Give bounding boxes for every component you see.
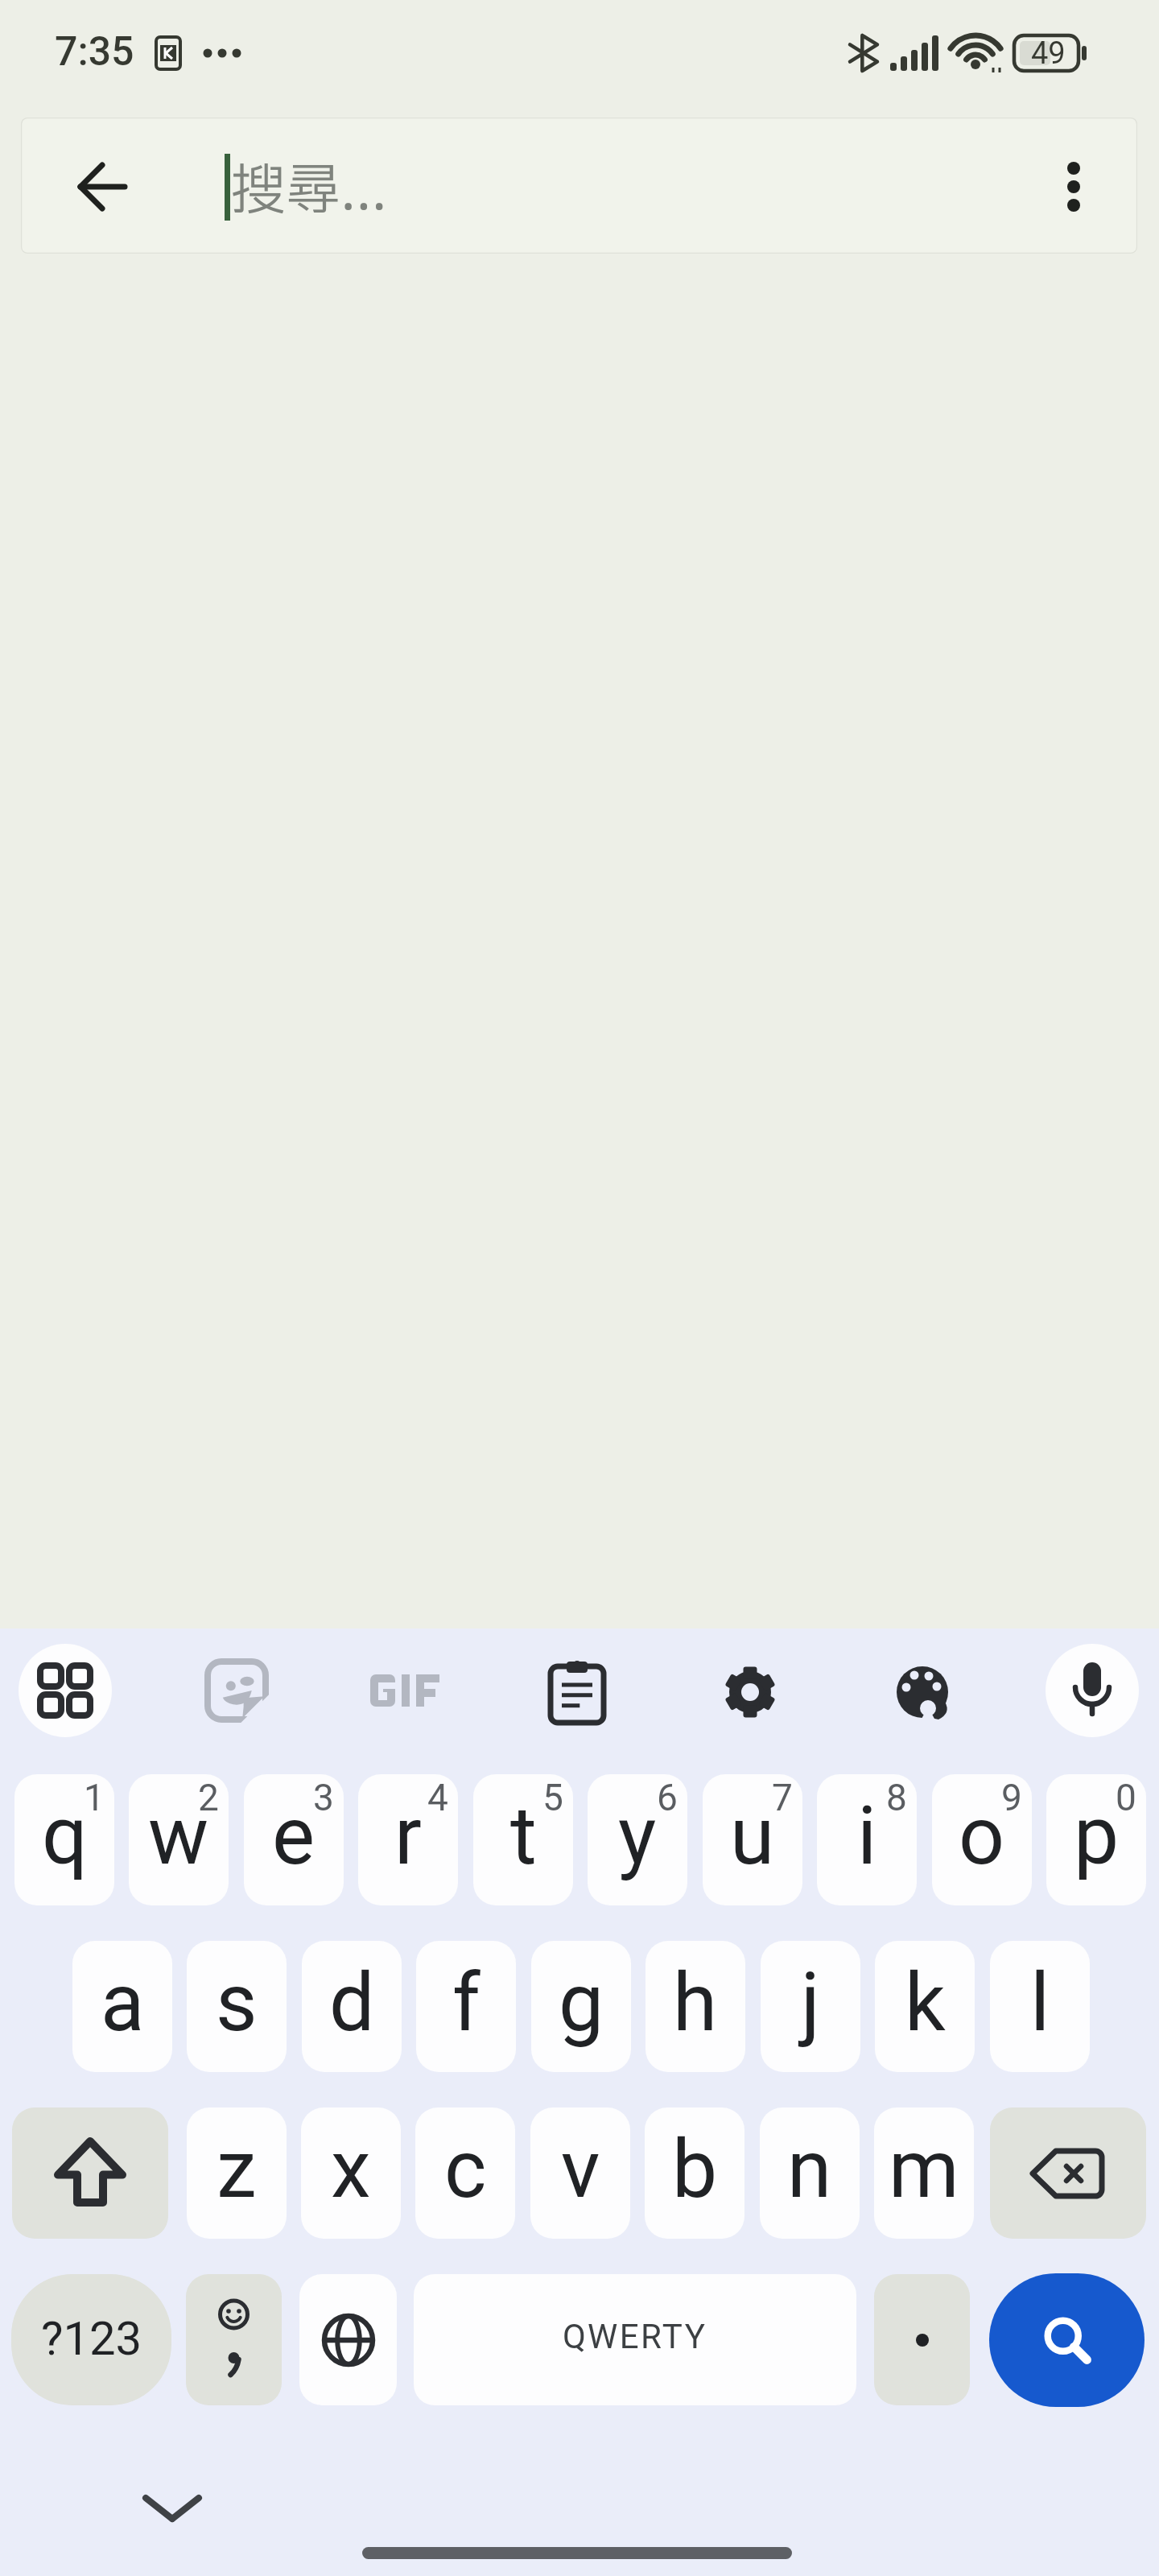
staticText: j	[801, 1955, 820, 2050]
staticText: ?123	[41, 2311, 142, 2366]
button[interactable]: s	[187, 1941, 287, 2072]
button[interactable]: ?123	[11, 2274, 171, 2405]
button[interactable]	[537, 1652, 617, 1732]
staticText: i	[857, 1789, 877, 1883]
button[interactable]	[299, 2274, 397, 2405]
button[interactable]: a	[72, 1941, 172, 2072]
staticText: h	[673, 1955, 718, 2050]
staticText: 1	[84, 1776, 105, 1819]
staticText: 0	[1116, 1776, 1136, 1819]
staticText: w	[148, 1789, 209, 1883]
button[interactable]: z	[187, 2107, 287, 2239]
button[interactable]: e	[244, 1774, 344, 1905]
staticText: v	[561, 2122, 600, 2216]
staticText: y	[618, 1789, 657, 1883]
button[interactable]	[990, 2107, 1146, 2239]
staticText: s	[216, 1955, 258, 2050]
staticText: 4	[427, 1776, 448, 1819]
button[interactable]: k	[875, 1941, 975, 2072]
staticText: a	[101, 1955, 145, 2050]
button[interactable]	[19, 1644, 112, 1737]
staticText: 7:35	[55, 28, 134, 76]
button[interactable]: p	[1046, 1774, 1146, 1905]
button[interactable]: x	[301, 2107, 401, 2239]
staticText: t	[510, 1789, 537, 1883]
staticText: 6	[657, 1776, 678, 1819]
staticText: g	[559, 1955, 604, 2050]
staticText: 9	[1001, 1776, 1022, 1819]
button[interactable]: t	[473, 1774, 573, 1905]
staticText: 搜尋...	[231, 151, 387, 233]
button[interactable]	[58, 143, 145, 230]
button[interactable]	[349, 1650, 461, 1731]
button[interactable]	[12, 2107, 168, 2239]
button[interactable]: b	[645, 2107, 744, 2239]
staticText: c	[444, 2122, 487, 2216]
button[interactable]: y	[588, 1774, 687, 1905]
button[interactable]	[710, 1652, 790, 1732]
staticText: r	[394, 1789, 422, 1883]
staticText: 49	[1031, 35, 1066, 72]
button[interactable]: m	[874, 2107, 974, 2239]
staticText: m	[889, 2122, 959, 2216]
staticText: 5	[542, 1776, 563, 1819]
button[interactable]: QWERTY	[414, 2274, 856, 2405]
button[interactable]: q	[14, 1774, 114, 1905]
button[interactable]: c	[415, 2107, 515, 2239]
staticText: b	[672, 2122, 718, 2216]
staticText: QWERTY	[563, 2317, 707, 2356]
staticText: z	[217, 2122, 257, 2216]
button[interactable]: d	[302, 1941, 402, 2072]
staticText: f	[452, 1955, 481, 2050]
button[interactable]: j	[761, 1941, 860, 2072]
button[interactable]	[882, 1652, 963, 1732]
button[interactable]	[186, 2274, 282, 2405]
staticText: u	[730, 1789, 775, 1883]
staticText: 7	[772, 1776, 793, 1819]
staticText: 8	[886, 1776, 907, 1819]
button[interactable]	[989, 2273, 1145, 2407]
staticText: x	[331, 2122, 371, 2216]
staticText: l	[1030, 1955, 1050, 2050]
button[interactable]: u	[703, 1774, 802, 1905]
button[interactable]: n	[760, 2107, 860, 2239]
staticText: n	[787, 2122, 832, 2216]
staticText: e	[272, 1789, 316, 1883]
button[interactable]: f	[416, 1941, 516, 2072]
button[interactable]: l	[990, 1941, 1090, 2072]
staticText: p	[1074, 1789, 1120, 1883]
button[interactable]: v	[530, 2107, 630, 2239]
button[interactable]: i	[817, 1774, 917, 1905]
button[interactable]	[1037, 150, 1111, 224]
staticText: o	[959, 1789, 1005, 1883]
button[interactable]: o	[932, 1774, 1032, 1905]
button[interactable]	[1046, 1644, 1139, 1737]
staticText: 2	[198, 1776, 219, 1819]
button[interactable]: g	[531, 1941, 631, 2072]
button[interactable]: h	[645, 1941, 745, 2072]
button[interactable]: r	[358, 1774, 458, 1905]
staticText: d	[329, 1955, 375, 2050]
staticText: q	[42, 1789, 88, 1883]
button[interactable]: w	[129, 1774, 229, 1905]
staticText: 3	[313, 1776, 334, 1819]
button[interactable]	[196, 1650, 277, 1731]
staticText: k	[905, 1955, 946, 2050]
button[interactable]	[874, 2274, 970, 2405]
button[interactable]	[132, 2476, 212, 2541]
